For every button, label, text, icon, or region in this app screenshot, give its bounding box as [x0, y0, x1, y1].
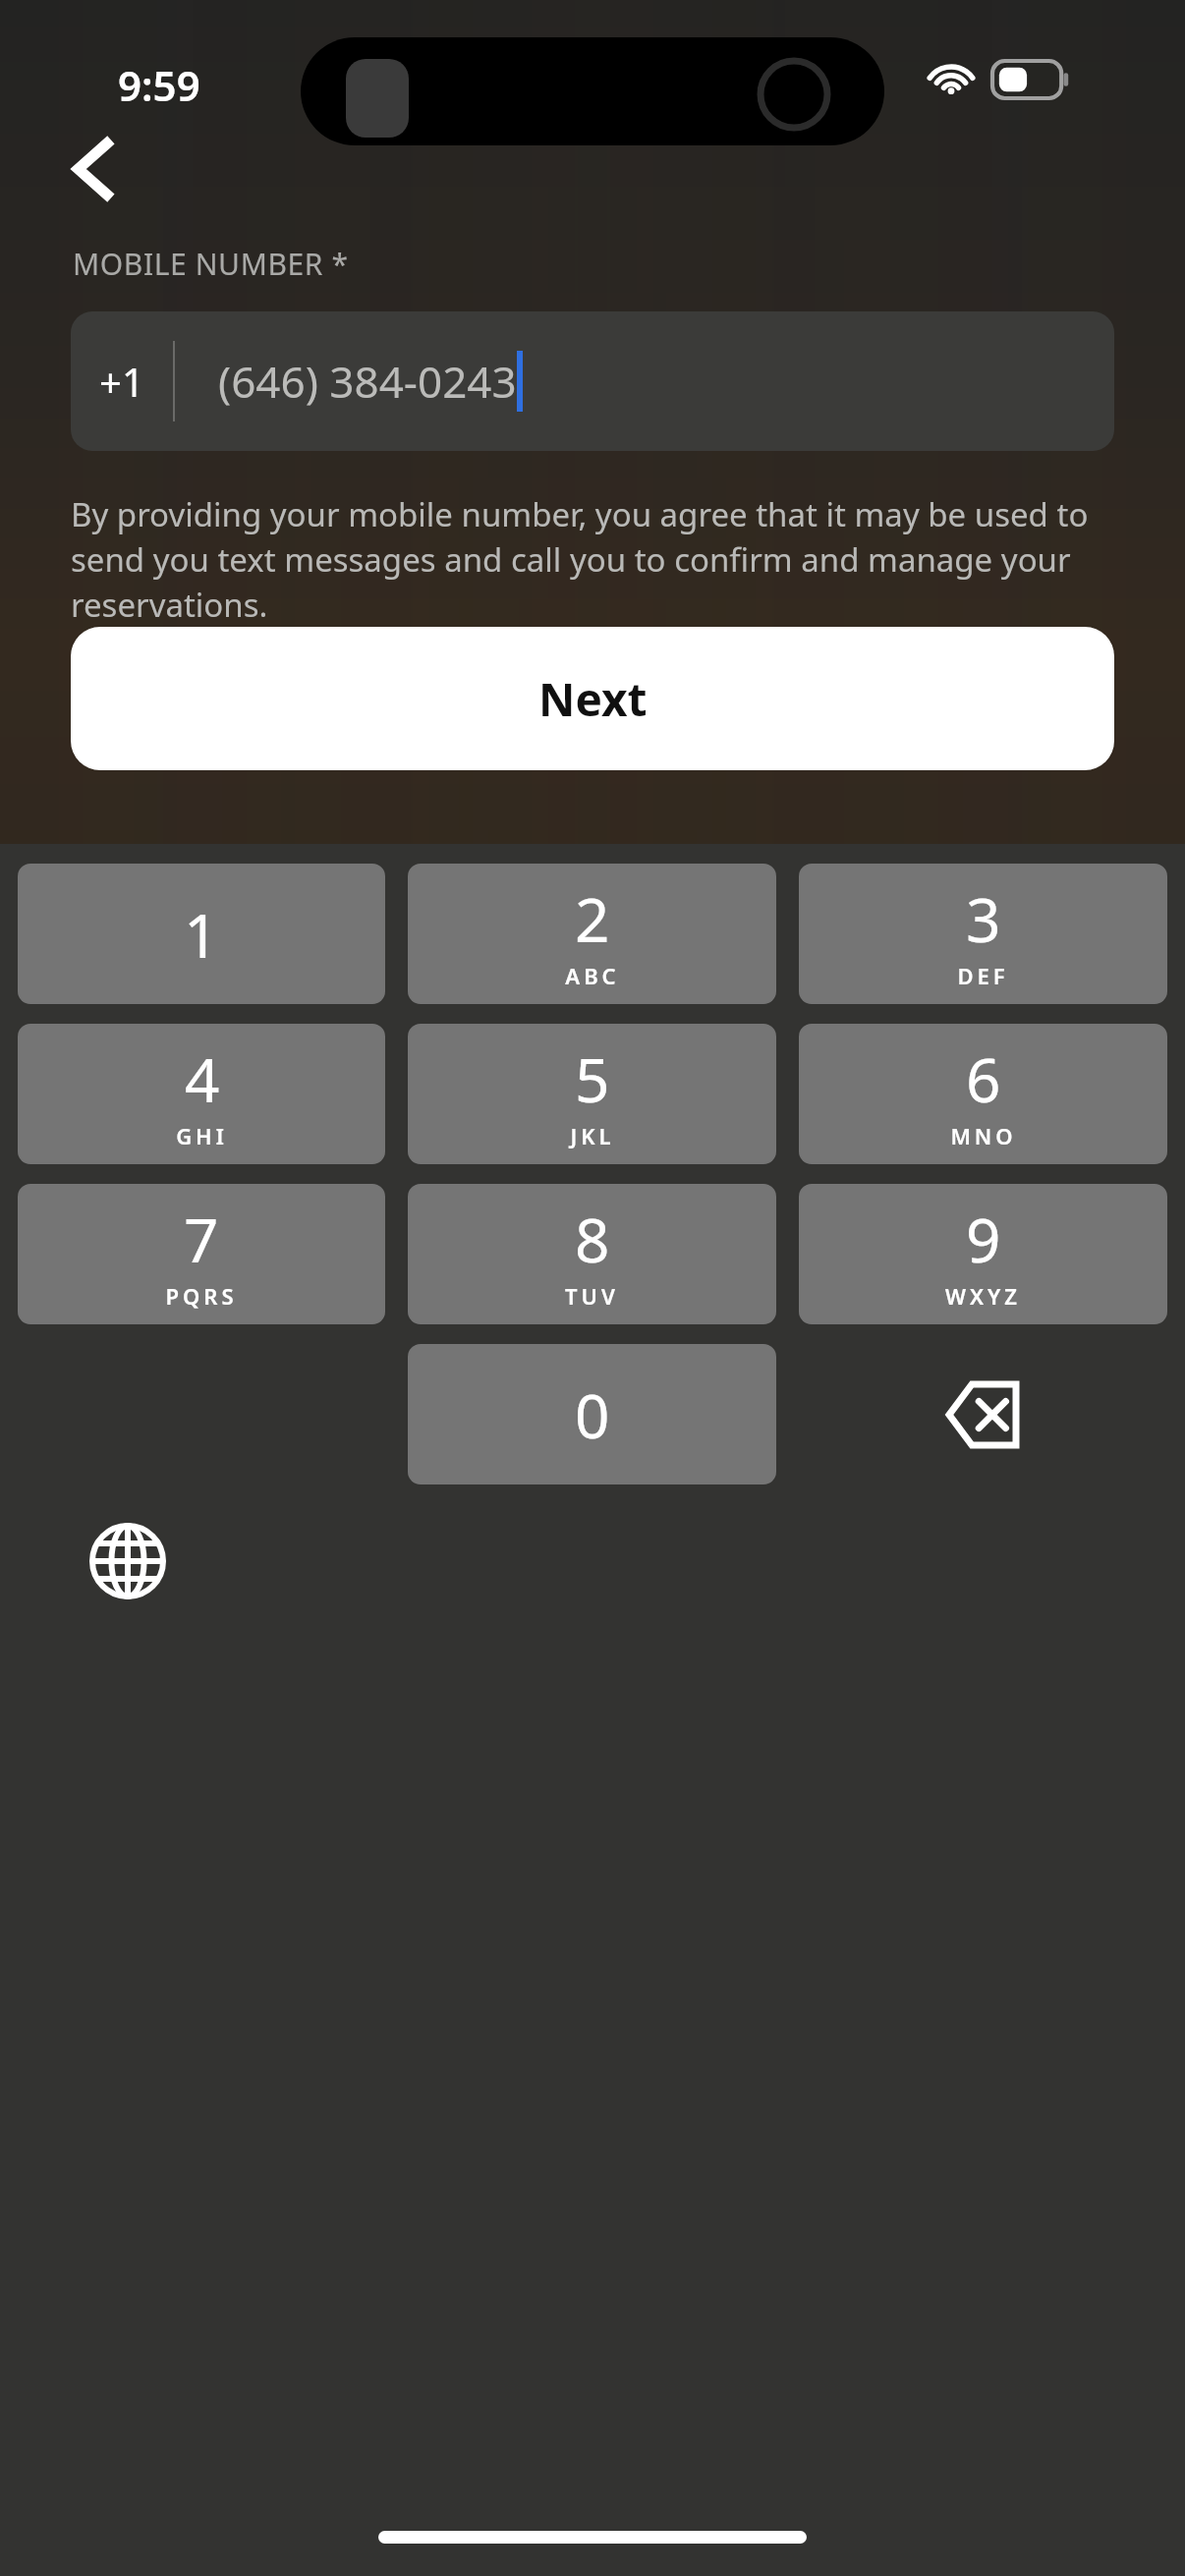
staticText: 1	[184, 893, 219, 976]
button[interactable]: 5	[408, 1024, 776, 1164]
button[interactable]: Next	[71, 627, 1114, 770]
button[interactable]: 9	[799, 1184, 1167, 1324]
button[interactable]: 1	[18, 864, 385, 1004]
button[interactable]: 7	[18, 1184, 385, 1324]
button[interactable]: 3	[799, 864, 1167, 1004]
button[interactable]: 2	[408, 864, 776, 1004]
staticText: 7	[184, 1198, 219, 1280]
staticText: MNO	[950, 1121, 1017, 1150]
staticText: WXYZ	[945, 1281, 1021, 1311]
staticText: 3	[966, 877, 1001, 960]
button[interactable]: 4	[18, 1024, 385, 1164]
staticText: DEF	[957, 961, 1009, 990]
staticText: 9	[966, 1198, 1001, 1280]
staticText: Next	[538, 668, 648, 730]
staticText: MOBILE NUMBER *	[73, 244, 349, 284]
button[interactable]: Backspace	[799, 1344, 1167, 1484]
button[interactable]: 8	[408, 1184, 776, 1324]
staticText: 0	[575, 1373, 610, 1456]
staticText: 4	[185, 1037, 220, 1120]
staticText: 5	[575, 1037, 610, 1120]
button[interactable]: 6	[799, 1024, 1167, 1164]
button[interactable]: +1	[71, 311, 1114, 451]
staticText: PQRS	[165, 1281, 238, 1311]
staticText: TUV	[565, 1281, 619, 1311]
button[interactable]: 0	[408, 1344, 776, 1484]
button[interactable]: Back	[43, 116, 149, 222]
staticText: +1	[99, 355, 144, 408]
button[interactable]: Change keyboard language	[88, 1522, 167, 1600]
staticText: 2	[575, 877, 610, 960]
staticText: (646) 384-0243	[218, 352, 517, 411]
staticText: 8	[575, 1198, 610, 1280]
staticText: 9:59	[118, 57, 200, 113]
staticText: GHI	[176, 1121, 228, 1150]
staticText: By providing your mobile number, you agr…	[71, 492, 1130, 627]
staticText: 6	[966, 1037, 1001, 1120]
staticText: JKL	[570, 1121, 615, 1150]
staticText: ABC	[565, 961, 620, 990]
